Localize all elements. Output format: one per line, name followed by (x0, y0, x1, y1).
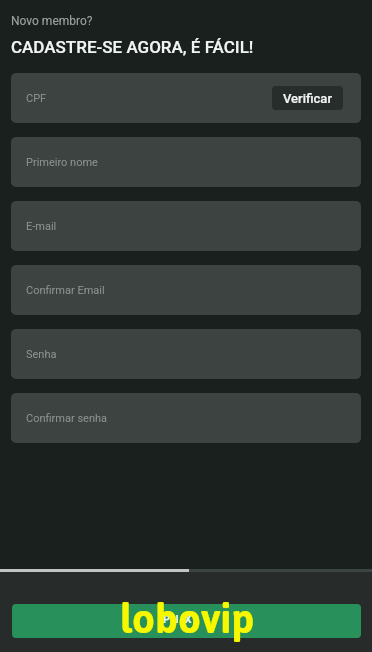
button[interactable]: E-mail (11, 201, 361, 251)
staticText: CPF (26, 92, 47, 105)
staticText: CADASTRE-SE AGORA, É FÁCIL! (11, 37, 254, 57)
staticText: Confirmar Email (26, 284, 105, 297)
button[interactable]: Senha (11, 329, 361, 379)
button[interactable]: Confirmar Email (11, 265, 361, 315)
staticText: E-mail (26, 220, 57, 233)
button[interactable]: Confirmar senha (11, 393, 361, 443)
button[interactable]: Primeiro nome (11, 137, 361, 187)
staticText: PIX (163, 613, 197, 626)
staticText: Novo membro? (11, 14, 93, 28)
button[interactable] (12, 604, 361, 638)
button[interactable]: CPF (11, 73, 361, 123)
button[interactable]: Verificar (272, 86, 343, 110)
staticText: Verificar (283, 91, 332, 106)
staticText: Senha (26, 348, 57, 361)
staticText: lobovip (120, 580, 255, 652)
staticText: Primeiro nome (26, 156, 98, 169)
staticText: Confirmar senha (26, 412, 108, 425)
